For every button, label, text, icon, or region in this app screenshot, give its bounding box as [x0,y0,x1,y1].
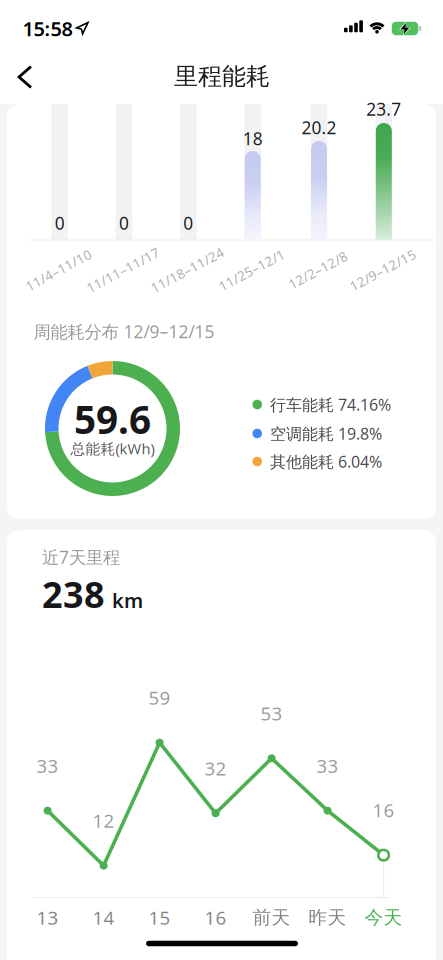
staticText: 昨天 [309,906,347,929]
staticText: 59.6 [74,393,151,445]
staticText: 空调能耗 19.8% [270,423,382,444]
staticText: 总能耗(kWh) [70,439,154,458]
staticText: 0 [183,211,193,234]
staticText: 其他能耗 6.04% [270,451,382,472]
staticText: 近7天里程 [42,545,120,568]
staticText: 11/25–12/1 [215,261,288,279]
staticText: 前天 [253,906,291,929]
staticText: 12/2–12/8 [285,261,350,279]
staticText: 0 [119,211,129,234]
staticText: 14 [93,905,115,930]
staticText: 53 [261,701,283,726]
staticText: 59 [149,685,171,710]
staticText: 12/9–12/15 [346,261,419,279]
staticText: 11/11–11/17 [82,261,163,279]
staticText: 33 [37,753,59,778]
staticText: 33 [317,753,339,778]
staticText: 11/18–11/24 [147,261,228,279]
button[interactable] [19,66,31,87]
staticText: 13 [37,905,59,930]
staticText: km [112,587,143,613]
staticText: 18 [243,127,263,150]
staticText: 行车能耗 74.16% [270,394,391,415]
staticText: 周能耗分布 12/9–12/15 [34,320,215,343]
staticText: 里程能耗 [174,62,270,91]
staticText: 32 [205,756,227,781]
staticText: 12 [93,808,115,833]
staticText: 15 [149,905,171,930]
staticText: 20.2 [301,116,336,139]
staticText: 238 [42,570,105,618]
staticText: 23.7 [366,97,401,120]
staticText: 15:58 [22,15,72,42]
staticText: 今天 [365,906,403,929]
staticText: 16 [205,905,227,930]
staticText: 16 [373,798,395,822]
staticText: 11/4–11/10 [22,261,95,279]
staticText: 0 [55,211,65,234]
